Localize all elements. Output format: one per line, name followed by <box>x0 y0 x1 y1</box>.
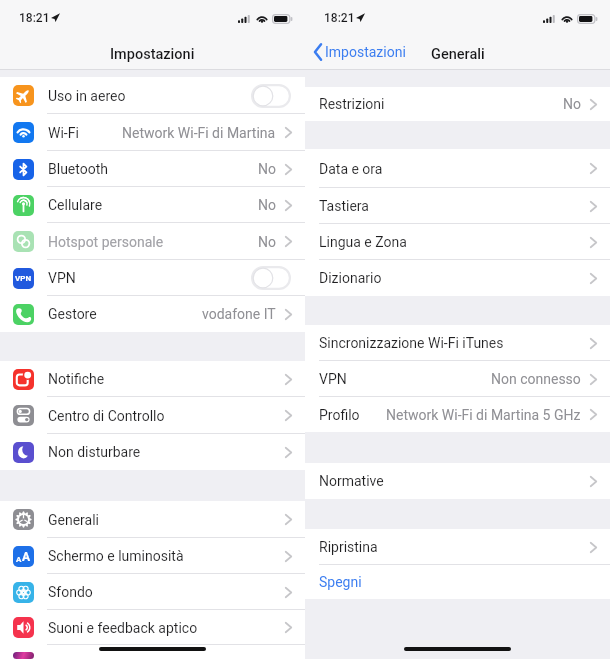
staticText: Generali <box>48 512 100 528</box>
button[interactable]: Cellulare <box>0 187 305 223</box>
staticText: Impostazioni <box>325 44 406 60</box>
staticText: Profilo <box>319 407 360 423</box>
button[interactable]: Sfondo <box>0 574 305 610</box>
staticText: A <box>16 555 22 564</box>
staticText: Gestore <box>48 306 97 322</box>
staticText: Generali <box>431 46 485 63</box>
button[interactable]: Non disturbare <box>0 434 305 470</box>
staticText: A <box>22 550 31 564</box>
button[interactable]: Sincronizzazione Wi-Fi iTunes <box>305 325 610 361</box>
button[interactable]: Toggle <box>251 84 291 108</box>
staticText: VPN <box>48 270 76 286</box>
staticText: Non connesso <box>491 371 581 387</box>
button[interactable]: Ripristina <box>305 529 610 565</box>
staticText: Hotspot personale <box>48 234 164 250</box>
staticText: Network Wi-Fi di Martina <box>122 125 276 141</box>
staticText: Bluetooth <box>48 161 108 177</box>
button[interactable]: Profilo <box>305 397 610 432</box>
button[interactable]: Data e ora <box>305 149 610 188</box>
button[interactable]: Generali <box>0 501 305 538</box>
button[interactable]: Suoni e feedback aptico <box>0 610 305 645</box>
button[interactable]: VPN <box>305 361 610 397</box>
button[interactable]: Normative <box>305 463 610 499</box>
button[interactable]: Hotspot personale <box>0 223 305 260</box>
staticText: Uso in aereo <box>48 88 126 104</box>
button[interactable]: Centro di Controllo <box>0 397 305 434</box>
staticText: Sfondo <box>48 584 93 600</box>
button[interactable] <box>0 645 305 659</box>
button[interactable]: Impostazioni <box>314 43 406 61</box>
staticText: vodafone IT <box>202 306 276 322</box>
staticText: No <box>563 96 581 112</box>
staticText: Non disturbare <box>48 444 141 460</box>
staticText: Data e ora <box>319 161 383 177</box>
button[interactable]: Dizionario <box>305 260 610 296</box>
staticText: No <box>258 161 276 177</box>
staticText: Tastiera <box>319 198 369 214</box>
staticText: VPN <box>319 371 347 387</box>
staticText: Restrizioni <box>319 96 385 112</box>
button[interactable]: Bluetooth <box>0 151 305 187</box>
staticText: Impostazioni <box>110 46 195 63</box>
staticText: Dizionario <box>319 270 382 286</box>
staticText: Centro di Controllo <box>48 408 165 424</box>
staticText: No <box>258 197 276 213</box>
button[interactable]: A <box>0 538 305 574</box>
staticText: Normative <box>319 473 384 489</box>
staticText: 18:21 <box>19 11 50 25</box>
button[interactable]: Notifiche <box>0 361 305 397</box>
staticText: 18:21 <box>324 11 355 25</box>
button[interactable]: Wi-Fi <box>0 114 305 151</box>
button[interactable]: Spegni <box>305 565 610 599</box>
staticText: Cellulare <box>48 197 103 213</box>
staticText: Sincronizzazione Wi-Fi iTunes <box>319 335 504 351</box>
staticText: Suoni e feedback aptico <box>48 620 198 636</box>
staticText: VPN <box>15 274 32 283</box>
staticText: Ripristina <box>319 539 378 555</box>
staticText: No <box>258 234 276 250</box>
button[interactable]: Gestore <box>0 296 305 332</box>
staticText: Network Wi-Fi di Martina 5 GHz <box>386 407 581 423</box>
button[interactable]: Uso in aereo <box>0 77 305 114</box>
button[interactable]: Lingua e Zona <box>305 224 610 260</box>
staticText: Notifiche <box>48 371 105 387</box>
button[interactable]: Tastiera <box>305 188 610 224</box>
staticText: Lingua e Zona <box>319 234 407 250</box>
staticText: Spegni <box>319 574 362 590</box>
button[interactable]: Restrizioni <box>305 87 610 121</box>
button[interactable]: Toggle <box>251 266 291 290</box>
staticText: Wi-Fi <box>48 125 79 141</box>
staticText: Schermo e luminosità <box>48 548 184 564</box>
button[interactable]: VPN <box>0 260 305 296</box>
